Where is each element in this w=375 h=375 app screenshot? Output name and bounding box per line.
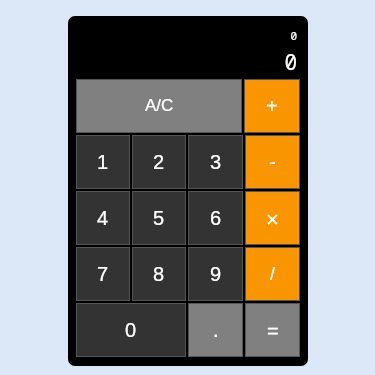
button[interactable]: 3	[188, 135, 243, 189]
button[interactable]: 2	[132, 135, 186, 189]
staticText: 2	[153, 151, 165, 173]
staticText: /	[270, 264, 276, 284]
staticText: 0	[290, 28, 297, 43]
button[interactable]: 0	[76, 303, 186, 357]
button[interactable]: /	[245, 247, 300, 301]
staticText: 8	[153, 263, 165, 285]
button[interactable]: 8	[132, 247, 186, 301]
button[interactable]: +	[244, 79, 300, 133]
button[interactable]: 4	[76, 191, 130, 245]
button[interactable]: ×	[245, 191, 300, 245]
staticText: 0	[125, 319, 137, 341]
button[interactable]: 5	[132, 191, 186, 245]
staticText: 4	[97, 207, 109, 229]
staticText: 6	[210, 207, 222, 229]
button[interactable]: A/C	[76, 79, 242, 133]
staticText: A/C	[145, 96, 174, 115]
staticText: .	[213, 319, 219, 341]
staticText: +	[266, 95, 278, 117]
staticText: 0	[284, 48, 297, 77]
staticText: =	[267, 320, 279, 342]
staticText: 5	[153, 207, 165, 229]
staticText: 9	[210, 263, 222, 285]
staticText: 1	[97, 151, 109, 173]
staticText: 3	[210, 151, 222, 173]
staticText: ×	[266, 207, 279, 232]
staticText: -	[269, 151, 276, 173]
staticText: 7	[97, 263, 109, 285]
button[interactable]: =	[245, 303, 300, 357]
button[interactable]: 6	[188, 191, 243, 245]
button[interactable]: 1	[76, 135, 130, 189]
button[interactable]: .	[188, 303, 243, 357]
button[interactable]: 7	[76, 247, 130, 301]
button[interactable]: -	[245, 135, 300, 189]
button[interactable]: 9	[188, 247, 243, 301]
